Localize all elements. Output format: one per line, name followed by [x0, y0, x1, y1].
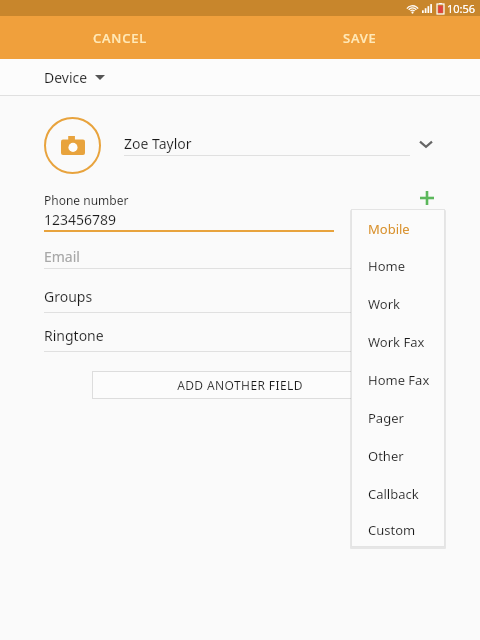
staticText: Zoe Taylor: [124, 134, 192, 153]
staticText: Callback: [368, 485, 419, 503]
staticText: SAVE: [343, 29, 377, 47]
button[interactable]: Add photo: [44, 117, 101, 174]
button[interactable]: Other: [351, 437, 445, 475]
staticText: ADD ANOTHER FIELD: [177, 377, 303, 393]
button[interactable]: Home Fax: [351, 361, 445, 399]
button[interactable]: Pager: [351, 399, 445, 437]
staticText: Groups: [44, 287, 93, 306]
button[interactable]: Home: [351, 247, 445, 285]
button[interactable]: Device: [44, 68, 105, 87]
button[interactable]: Mobile: [351, 210, 445, 248]
button[interactable]: ADD ANOTHER FIELD: [92, 371, 388, 399]
staticText: 10:56: [447, 1, 476, 16]
staticText: 123456789: [44, 210, 117, 229]
staticText: Work: [368, 295, 401, 313]
button[interactable]: Work Fax: [351, 323, 445, 361]
staticText: CANCEL: [93, 29, 148, 47]
staticText: Device: [44, 68, 88, 87]
button[interactable]: Email: [44, 245, 436, 267]
staticText: Custom: [368, 521, 416, 539]
staticText: Mobile: [368, 220, 410, 238]
staticText: Home Fax: [368, 371, 430, 389]
button[interactable]: Custom: [351, 513, 445, 547]
button[interactable]: Add phone number: [412, 183, 442, 213]
button[interactable]: Zoe Taylor: [124, 130, 414, 156]
button[interactable]: Work: [351, 285, 445, 323]
staticText: Email: [44, 247, 80, 266]
button[interactable]: 123456789: [44, 208, 334, 230]
button[interactable]: Ringtone: [44, 324, 436, 347]
staticText: Home: [368, 257, 405, 275]
button[interactable]: Expand name: [412, 130, 440, 158]
staticText: Phone number: [44, 192, 129, 208]
button[interactable]: Callback: [351, 475, 445, 513]
button[interactable]: SAVE: [300, 16, 420, 59]
staticText: Work Fax: [368, 333, 425, 351]
staticText: Ringtone: [44, 326, 104, 345]
button[interactable]: CANCEL: [60, 16, 180, 59]
staticText: Pager: [368, 409, 404, 427]
button[interactable]: Groups: [44, 285, 436, 308]
staticText: Other: [368, 447, 404, 465]
